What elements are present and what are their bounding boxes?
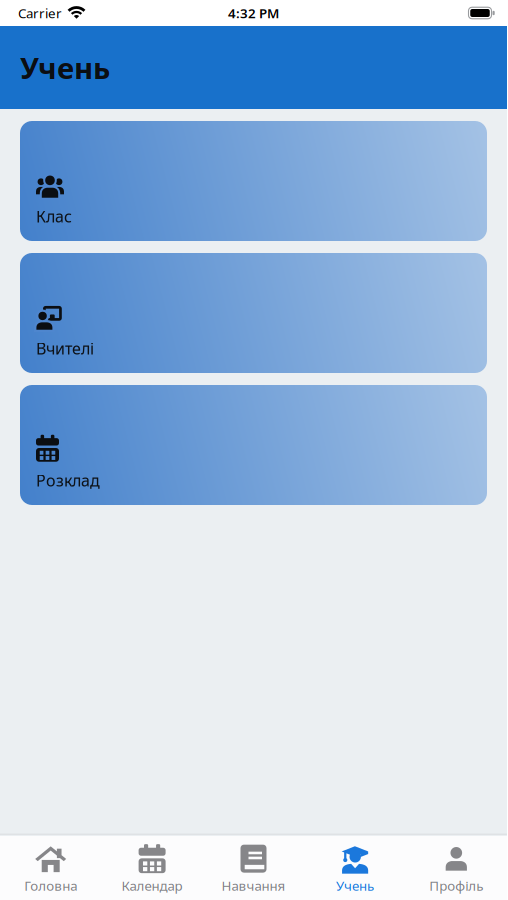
staticText: Carrier <box>18 4 62 22</box>
staticText: Профіль <box>429 877 483 894</box>
button[interactable]: Календар <box>101 844 203 894</box>
staticText: Навчання <box>221 877 285 894</box>
staticText: Клас <box>36 206 72 227</box>
button[interactable]: Клас <box>20 121 487 241</box>
staticText: Учень <box>336 877 374 894</box>
staticText: Вчителі <box>36 338 94 359</box>
button[interactable]: Учень <box>304 844 406 894</box>
button[interactable]: Розклад <box>20 385 487 505</box>
button[interactable]: Навчання <box>203 844 304 894</box>
button[interactable]: Вчителі <box>20 253 487 373</box>
button[interactable]: Профіль <box>406 844 507 894</box>
staticText: Головна <box>24 877 77 894</box>
staticText: Календар <box>122 877 183 894</box>
staticText: 4:32 PM <box>228 4 279 22</box>
staticText: Розклад <box>36 470 100 491</box>
button[interactable]: Головна <box>0 844 101 894</box>
staticText: Учень <box>20 48 110 87</box>
